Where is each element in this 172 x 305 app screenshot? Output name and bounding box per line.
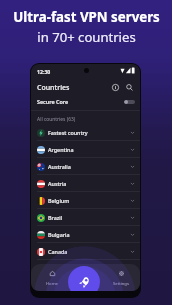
button[interactable]: Home — [41, 268, 63, 287]
button[interactable]: Search — [123, 81, 135, 93]
staticText: Argentina — [48, 146, 74, 153]
staticText: Belgium — [48, 197, 70, 204]
button[interactable]: Connect — [68, 266, 100, 291]
button[interactable]: Austria — [31, 175, 140, 192]
staticText: Home — [46, 281, 58, 287]
button[interactable]: Brazil — [31, 209, 140, 226]
staticText: Bulgaria — [48, 231, 70, 238]
staticText: in 70+ countries — [37, 28, 136, 46]
staticText: Ultra-fast VPN servers — [13, 8, 160, 26]
staticText: Brazil — [48, 214, 63, 221]
staticText: Australia — [48, 163, 71, 170]
button[interactable]: Information — [109, 81, 121, 93]
staticText: Secure Core — [37, 98, 69, 105]
staticText: Fastest country — [48, 129, 88, 136]
button[interactable]: Settings — [110, 268, 132, 287]
button[interactable]: Argentina — [31, 141, 140, 158]
button[interactable]: Belgium — [31, 192, 140, 209]
staticText: Countries — [37, 83, 70, 93]
staticText: Austria — [48, 180, 67, 187]
staticText: Settings — [113, 281, 129, 287]
staticText: All countries (63) — [37, 116, 76, 123]
button[interactable]: Bulgaria — [31, 226, 140, 243]
staticText: Canada — [48, 248, 68, 255]
button[interactable]: Fastest country — [31, 124, 140, 141]
button[interactable]: Secure Core — [31, 94, 140, 109]
staticText: 12:30 — [37, 68, 51, 75]
button[interactable]: Canada — [31, 243, 140, 260]
button[interactable]: Australia — [31, 158, 140, 175]
